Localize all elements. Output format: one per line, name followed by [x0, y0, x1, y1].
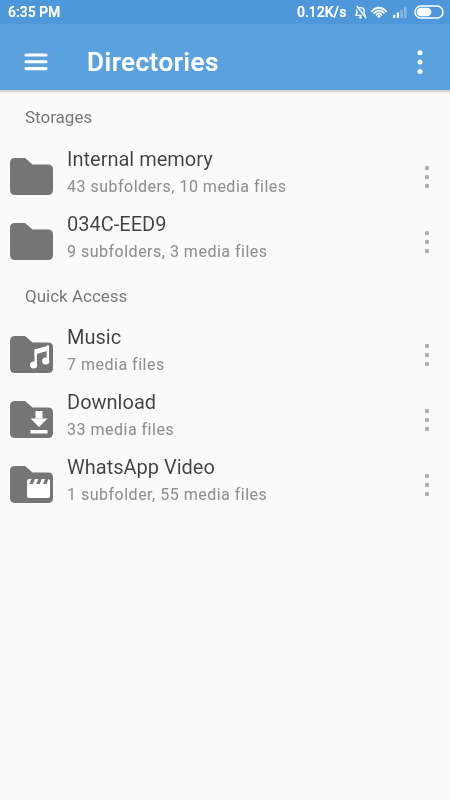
staticText: Storages [25, 107, 93, 127]
staticText: 7 media files [67, 355, 165, 374]
staticText: 9 subfolders, 3 media files [67, 242, 268, 261]
staticText: Music [67, 325, 122, 348]
staticText: 1 subfolder, 55 media files [67, 485, 268, 504]
staticText: 33 media files [67, 420, 175, 439]
staticText: 6:35 PM [8, 4, 61, 20]
staticText: 0.12K/s [297, 4, 347, 20]
staticText: Directories [87, 47, 219, 77]
staticText: Download [67, 390, 157, 413]
staticText: Quick Access [25, 286, 128, 306]
staticText: WhatsApp Video [67, 455, 215, 478]
staticText: 43 subfolders, 10 media files [67, 177, 287, 196]
staticText: 034C-EED9 [67, 212, 167, 235]
staticText: Internal memory [67, 147, 213, 170]
